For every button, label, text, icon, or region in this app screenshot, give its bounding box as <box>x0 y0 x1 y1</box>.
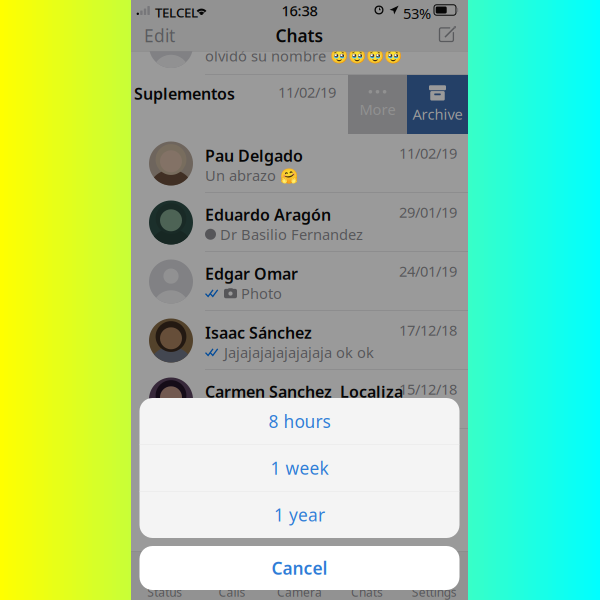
button[interactable]: Isaac Sánchez <box>131 311 468 370</box>
staticText: Suplementos <box>134 83 235 104</box>
staticText: TELCEL <box>155 3 198 21</box>
staticText: Archive <box>412 104 462 124</box>
button[interactable]: Archive <box>407 75 468 134</box>
staticText: 11/02/19 <box>278 82 336 102</box>
button[interactable]: 8 hours <box>139 398 459 444</box>
staticText: Isaac Sánchez <box>205 322 312 343</box>
staticText: Settings <box>412 584 457 600</box>
staticText: 1 year <box>274 503 325 526</box>
staticText: 1 week <box>270 456 328 479</box>
staticText: Edgar Omar <box>205 263 298 284</box>
staticText: 17/12/18 <box>399 320 457 340</box>
staticText: Status <box>147 584 182 600</box>
button[interactable]: Status <box>131 551 198 600</box>
button[interactable]: Edgar Omar <box>131 252 468 311</box>
staticText: Photo <box>241 283 282 303</box>
button[interactable]: Carmen Sanchez Localiza <box>131 370 468 429</box>
button[interactable]: Edit <box>131 20 188 51</box>
button[interactable]: Settings <box>401 551 468 600</box>
button[interactable]: 1 year <box>139 492 459 538</box>
staticText: Camera <box>277 584 322 600</box>
button[interactable]: Calls <box>198 551 266 600</box>
staticText: Edit <box>144 24 175 47</box>
button[interactable]: New chat <box>428 20 468 51</box>
staticText: 53% <box>403 3 431 23</box>
staticText: Jajajajajajajajaja ok ok <box>224 342 374 362</box>
button[interactable]: Cancel <box>139 546 459 590</box>
staticText: 29/01/19 <box>399 202 457 222</box>
staticText: Eduardo Aragón <box>205 204 331 225</box>
button[interactable]: Pau Delgado <box>131 134 468 193</box>
staticText: 16:38 <box>281 1 317 20</box>
staticText: Cancel <box>271 556 327 579</box>
staticText: Calls <box>219 584 246 600</box>
staticText: Chats <box>275 24 323 47</box>
staticText: Carmen Sanchez Localiza <box>205 381 403 402</box>
button[interactable]: 1 week <box>139 445 459 491</box>
button[interactable]: Camera <box>266 551 333 600</box>
staticText: 11/02/19 <box>399 143 457 163</box>
staticText: 15/12/18 <box>399 379 457 399</box>
staticText: Dr Basilio Fernandez <box>220 224 363 244</box>
staticText: Pau Delgado <box>205 145 303 166</box>
staticText: Un abrazo 🤗 <box>205 165 298 185</box>
staticText: More <box>359 100 395 119</box>
button[interactable]: Chats <box>333 551 401 600</box>
staticText: olvidó su nombre 🥹🥹🥹🥹 <box>205 46 402 65</box>
button[interactable]: Eduardo Aragón <box>131 193 468 252</box>
staticText: Chats <box>351 584 383 600</box>
button[interactable]: More <box>348 75 407 134</box>
staticText: 8 hours <box>268 410 330 433</box>
staticText: 24/01/19 <box>399 261 457 281</box>
